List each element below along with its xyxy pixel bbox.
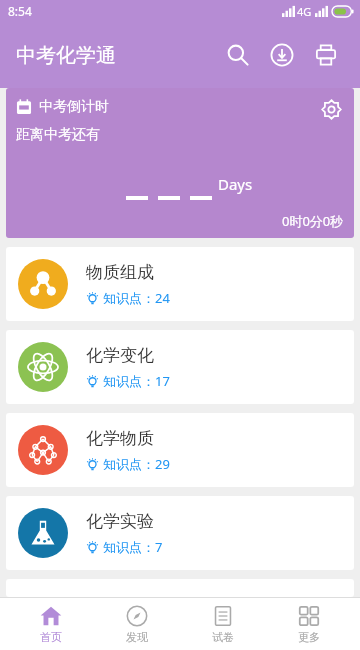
- staticText: 化学实验: [86, 511, 154, 532]
- button[interactable]: Download: [260, 33, 304, 77]
- staticText: 知识点：29: [103, 455, 170, 473]
- staticText: 0时0分0秒: [282, 212, 344, 230]
- button[interactable]: Search: [216, 33, 260, 77]
- staticText: 中考化学通: [16, 43, 116, 68]
- button[interactable]: 发现: [102, 598, 172, 650]
- button[interactable]: 化学物质: [6, 413, 354, 487]
- staticText: 发现: [126, 630, 148, 644]
- button[interactable]: Print: [304, 33, 348, 77]
- staticText: Days: [218, 174, 253, 194]
- staticText: 试卷: [212, 630, 234, 644]
- button[interactable]: 化学变化: [6, 330, 354, 404]
- button[interactable]: 更多: [274, 598, 344, 650]
- staticText: 物质组成: [86, 262, 154, 283]
- staticText: 距离中考还有: [16, 126, 100, 144]
- button[interactable]: 首页: [16, 598, 86, 650]
- button[interactable]: 中考倒计时: [6, 88, 354, 238]
- staticText: 首页: [40, 630, 62, 644]
- staticText: 中考倒计时: [39, 98, 109, 116]
- button[interactable]: 试卷: [188, 598, 258, 650]
- staticText: 更多: [298, 630, 320, 644]
- button[interactable]: 化学实验: [6, 496, 354, 570]
- staticText: 8:54: [8, 3, 32, 19]
- button[interactable]: Settings: [316, 94, 346, 124]
- staticText: 知识点：24: [103, 289, 170, 307]
- staticText: 4G: [297, 4, 312, 19]
- button[interactable]: 物质组成: [6, 247, 354, 321]
- staticText: 化学变化: [86, 345, 154, 366]
- staticText: 知识点：17: [103, 372, 170, 390]
- staticText: 化学物质: [86, 428, 154, 449]
- staticText: 知识点：7: [103, 538, 163, 556]
